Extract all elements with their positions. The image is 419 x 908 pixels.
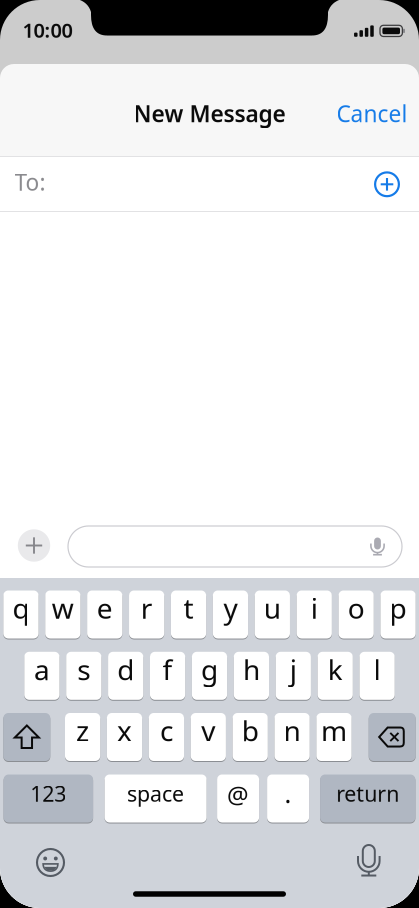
staticText: f [163, 651, 173, 688]
button[interactable]: Shift [3, 712, 50, 761]
staticText: Cancel [336, 98, 407, 128]
button[interactable]: k [318, 651, 353, 700]
staticText: @ [227, 779, 249, 810]
button[interactable]: return [320, 774, 415, 823]
staticText: 123 [30, 779, 66, 808]
staticText: r [141, 589, 153, 627]
button[interactable]: j [276, 651, 311, 700]
staticText: g [201, 651, 218, 688]
staticText: k [328, 651, 343, 688]
staticText: n [284, 712, 301, 749]
button[interactable]: q [3, 590, 38, 639]
button[interactable]: @ [217, 774, 259, 823]
button[interactable]: o [338, 590, 374, 639]
staticText: a [34, 651, 50, 688]
button[interactable]: s [66, 651, 101, 700]
button[interactable]: n [274, 712, 310, 761]
button[interactable]: 123 [4, 774, 93, 823]
staticText: space [127, 779, 184, 808]
staticText: y [223, 589, 237, 627]
button[interactable]: p [380, 590, 416, 639]
button[interactable]: w [45, 590, 80, 639]
button[interactable]: y [213, 590, 248, 639]
staticText: m [321, 712, 347, 749]
staticText: v [201, 712, 215, 749]
staticText: p [389, 589, 406, 627]
button[interactable]: Apps [16, 527, 52, 563]
button[interactable]: space [105, 774, 207, 823]
staticText: New Message [133, 98, 285, 128]
staticText: w [52, 589, 74, 627]
button[interactable]: c [149, 712, 184, 761]
staticText: . [285, 777, 292, 810]
staticText: e [97, 589, 113, 627]
button[interactable]: b [233, 712, 268, 761]
staticText: h [243, 651, 260, 688]
button[interactable]: x [107, 712, 142, 761]
button[interactable]: m [316, 712, 352, 761]
staticText: s [77, 651, 90, 688]
button[interactable]: Emoji [35, 847, 65, 877]
button[interactable]: a [24, 651, 59, 700]
staticText: x [117, 712, 132, 749]
button[interactable]: u [255, 590, 290, 639]
button[interactable]: i [297, 590, 332, 639]
staticText: o [348, 589, 365, 627]
staticText: return [336, 779, 399, 808]
staticText: z [76, 712, 89, 749]
button[interactable]: . [267, 774, 309, 823]
button[interactable]: v [191, 712, 226, 761]
button[interactable]: r [129, 590, 164, 639]
staticText: j [290, 651, 297, 688]
button[interactable]: Dictation [356, 844, 382, 878]
staticText: u [264, 589, 281, 627]
staticText: b [242, 712, 259, 749]
button[interactable]: e [87, 590, 122, 639]
staticText: l [374, 651, 381, 688]
button[interactable]: f [150, 651, 185, 700]
button[interactable]: d [108, 651, 143, 700]
staticText: To: [14, 167, 45, 197]
button[interactable]: Cancel [336, 90, 407, 136]
button[interactable]: Message [68, 526, 402, 567]
staticText: q [12, 589, 29, 627]
staticText: c [160, 712, 173, 749]
button[interactable]: h [234, 651, 269, 700]
staticText: t [183, 589, 193, 627]
staticText: i [311, 589, 318, 627]
button[interactable]: z [65, 712, 100, 761]
button[interactable]: l [359, 651, 395, 700]
staticText: 10:00 [22, 17, 72, 43]
button[interactable]: Add Contact [373, 170, 401, 198]
button[interactable]: Delete [369, 712, 416, 761]
button[interactable]: g [192, 651, 227, 700]
staticText: d [117, 651, 134, 688]
button[interactable]: t [171, 590, 206, 639]
